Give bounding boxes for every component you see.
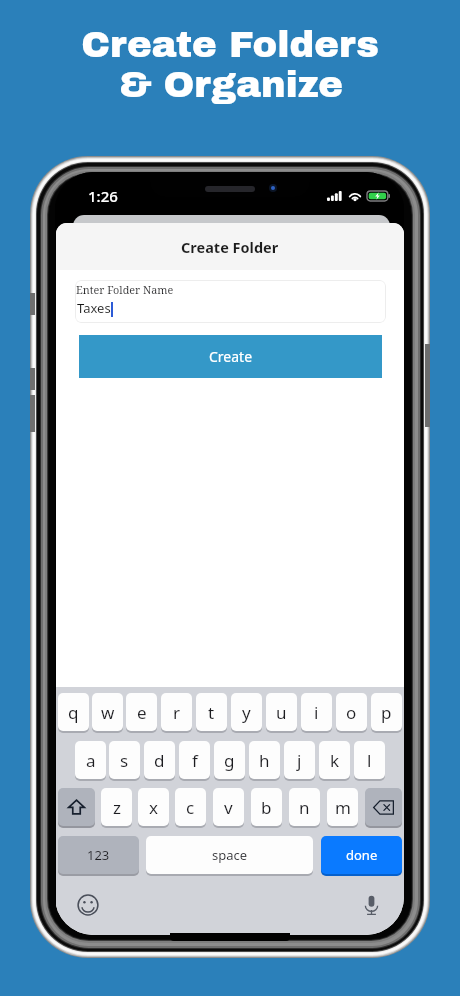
button[interactable]: Emoji keyboard — [75, 892, 101, 918]
staticText: g — [224, 749, 235, 772]
button[interactable]: p — [371, 693, 402, 731]
staticText: u — [276, 701, 287, 724]
button[interactable]: l — [354, 741, 385, 779]
staticText: c — [186, 796, 195, 819]
button[interactable]: t — [196, 693, 227, 731]
button[interactable]: n — [289, 788, 320, 826]
staticText: done — [346, 846, 378, 864]
button[interactable]: u — [266, 693, 297, 731]
staticText: d — [154, 749, 165, 772]
button[interactable]: y — [231, 693, 262, 731]
button[interactable]: e — [126, 693, 157, 731]
staticText: 123 — [87, 846, 110, 864]
staticText: q — [68, 701, 79, 724]
staticText: t — [208, 701, 215, 724]
staticText: Create Folder — [181, 237, 279, 257]
button[interactable]: x — [138, 788, 169, 826]
button[interactable]: i — [301, 693, 332, 731]
button[interactable]: 123 — [58, 836, 139, 874]
staticText: & Organize — [118, 65, 343, 105]
button[interactable]: done — [321, 836, 402, 874]
button[interactable]: z — [101, 788, 132, 826]
staticText: n — [299, 796, 310, 819]
button[interactable]: a — [75, 741, 106, 779]
staticText: p — [381, 701, 392, 724]
staticText: h — [259, 749, 270, 772]
button[interactable]: h — [249, 741, 280, 779]
button[interactable]: c — [175, 788, 206, 826]
staticText: 1:26 — [88, 186, 118, 206]
button[interactable]: s — [109, 741, 140, 779]
button[interactable]: space — [146, 836, 313, 874]
staticText: Taxes — [77, 299, 111, 317]
staticText: Enter Folder Name — [76, 282, 174, 297]
staticText: a — [86, 749, 96, 772]
staticText: e — [137, 701, 147, 724]
staticText: f — [192, 749, 198, 772]
button[interactable]: Create — [79, 335, 382, 378]
button[interactable]: b — [251, 788, 282, 826]
button[interactable]: k — [319, 741, 350, 779]
button[interactable]: v — [213, 788, 244, 826]
button[interactable]: q — [58, 693, 89, 731]
staticText: i — [314, 701, 319, 724]
button[interactable]: o — [336, 693, 367, 731]
button[interactable]: Enter Folder Name — [75, 280, 386, 323]
button[interactable]: d — [144, 741, 175, 779]
button[interactable]: Shift — [58, 788, 95, 826]
staticText: l — [367, 749, 372, 772]
staticText: x — [149, 796, 158, 819]
staticText: z — [113, 796, 121, 819]
staticText: r — [173, 701, 181, 724]
button[interactable]: w — [92, 693, 123, 731]
staticText: Create — [209, 347, 253, 366]
staticText: w — [101, 701, 115, 724]
staticText: s — [120, 749, 129, 772]
staticText: v — [224, 796, 233, 819]
staticText: o — [346, 701, 357, 724]
button[interactable]: r — [161, 693, 192, 731]
staticText: y — [242, 701, 251, 724]
button[interactable]: f — [179, 741, 210, 779]
staticText: b — [261, 796, 272, 819]
button[interactable]: Backspace — [365, 788, 402, 826]
staticText: m — [335, 796, 351, 819]
button[interactable]: g — [214, 741, 245, 779]
staticText: Create Folders — [81, 25, 379, 65]
button[interactable]: j — [284, 741, 315, 779]
staticText: space — [212, 846, 248, 864]
button[interactable]: Dictate — [358, 892, 384, 918]
staticText: j — [297, 749, 302, 772]
button[interactable]: m — [327, 788, 358, 826]
staticText: k — [330, 749, 340, 772]
